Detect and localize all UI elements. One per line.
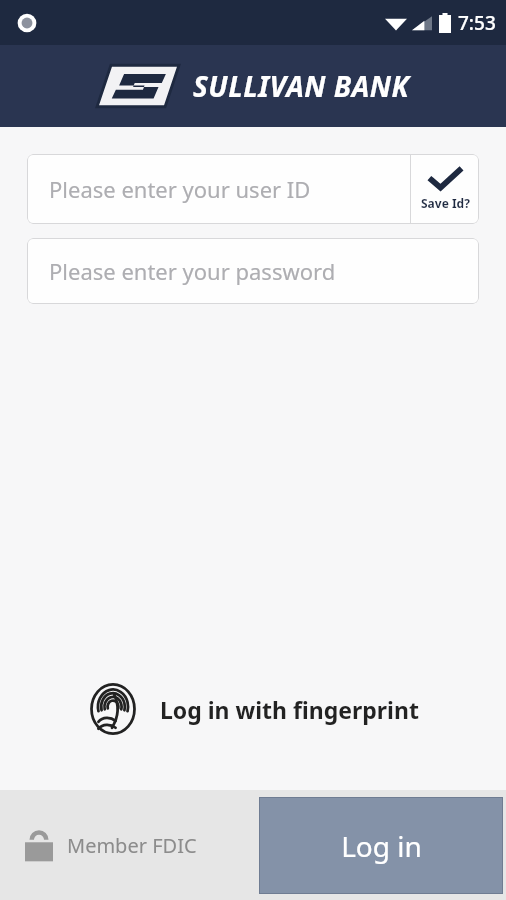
button[interactable]: Log in bbox=[259, 797, 503, 894]
button[interactable]: Please enter your password bbox=[27, 238, 479, 304]
staticText: Please enter your password bbox=[49, 256, 336, 286]
staticText: Please enter your user ID bbox=[49, 174, 311, 204]
staticText: Save Id? bbox=[421, 195, 470, 211]
staticText: SULLIVAN BANK bbox=[193, 67, 410, 105]
staticText: Member FDIC bbox=[67, 832, 197, 859]
button[interactable]: Log in with fingerprint bbox=[0, 673, 506, 745]
staticText: Log in with fingerprint bbox=[160, 694, 419, 725]
staticText: 7:53 bbox=[458, 10, 496, 36]
staticText: Log in bbox=[341, 827, 422, 865]
button[interactable]: Member FDIC bbox=[25, 828, 197, 862]
button[interactable]: Please enter your user ID bbox=[27, 154, 479, 224]
button[interactable]: Save Id bbox=[411, 154, 479, 224]
